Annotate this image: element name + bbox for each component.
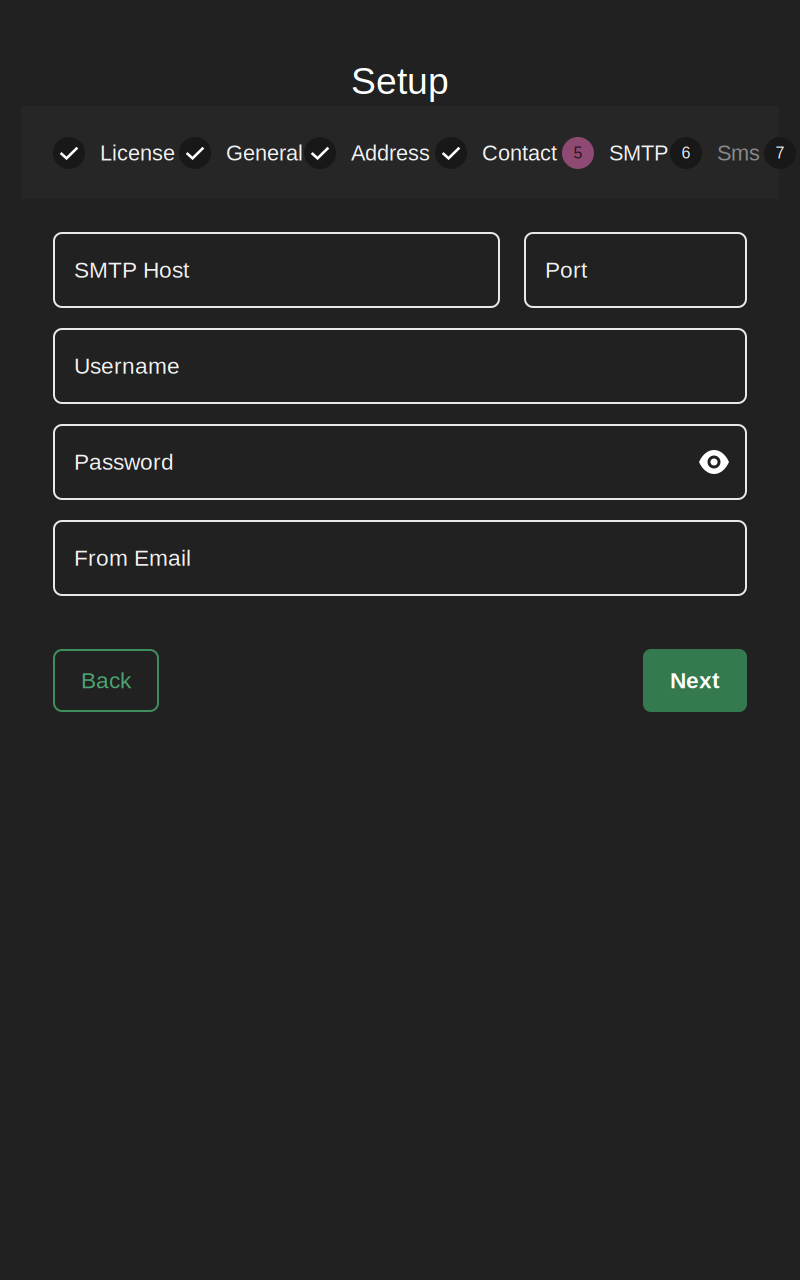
button[interactable]: License: [0, 137, 800, 169]
staticText: Setup: [351, 60, 449, 102]
staticText: SMTP Host: [74, 257, 189, 283]
staticText: License: [100, 141, 175, 165]
button[interactable]: Next: [643, 649, 747, 712]
button[interactable]: 5: [0, 137, 800, 169]
staticText: Address: [351, 141, 430, 165]
button[interactable]: Contact: [0, 137, 800, 169]
button[interactable]: Back: [53, 649, 159, 712]
staticText: Port: [545, 257, 587, 283]
button[interactable]: 6: [0, 137, 800, 169]
staticText: 6: [681, 144, 690, 162]
button[interactable]: Address: [0, 137, 800, 169]
staticText: Sms: [717, 141, 760, 165]
staticText: Back: [81, 668, 131, 693]
button[interactable]: General: [0, 137, 800, 169]
staticText: From Email: [74, 545, 191, 571]
staticText: 5: [573, 144, 582, 162]
staticText: 7: [775, 144, 784, 162]
staticText: Contact: [482, 141, 557, 165]
staticText: General: [226, 141, 303, 165]
staticText: Next: [670, 668, 720, 693]
staticText: SMTP: [609, 141, 668, 165]
staticText: Password: [74, 449, 174, 475]
button[interactable]: Show password: [694, 442, 734, 482]
staticText: Username: [74, 353, 180, 379]
